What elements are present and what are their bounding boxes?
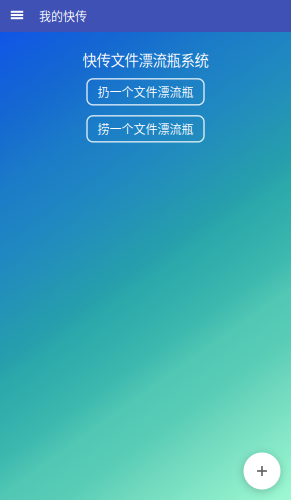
staticText: 快传文件漂流瓶系统 xyxy=(82,49,208,70)
button[interactable]: 扔一个文件漂流瓶 xyxy=(87,79,204,105)
staticText: 我的快传 xyxy=(39,7,87,25)
button[interactable]: 捞一个文件漂流瓶 xyxy=(87,116,204,142)
staticText: 捞一个文件漂流瓶 xyxy=(97,120,193,138)
button[interactable]: Menu xyxy=(4,3,30,29)
button[interactable]: Add xyxy=(238,447,286,495)
staticText: 扔一个文件漂流瓶 xyxy=(97,83,193,101)
